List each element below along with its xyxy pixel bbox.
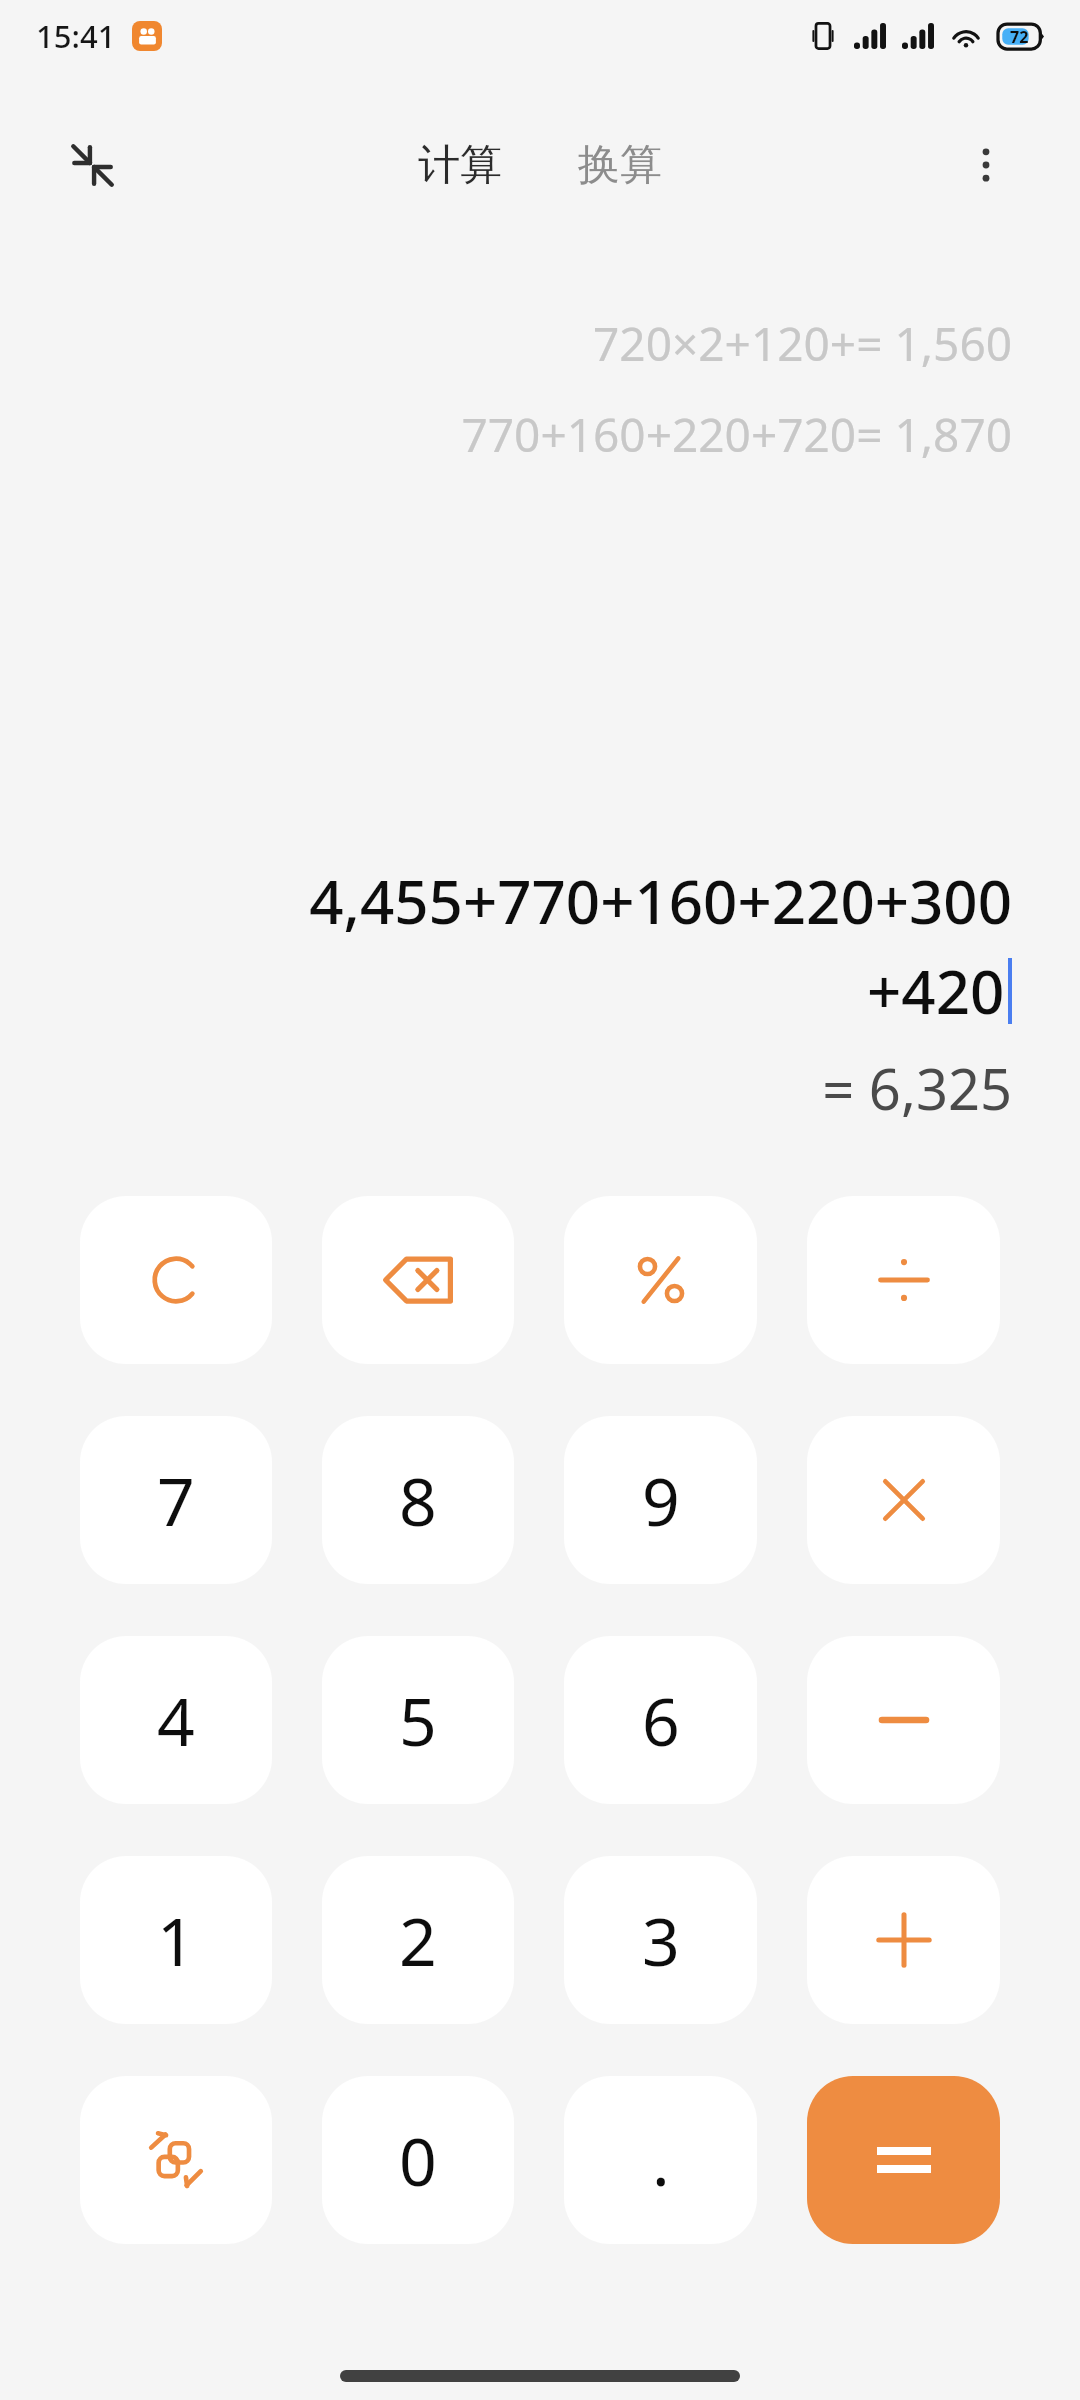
button[interactable]: Divide <box>807 1196 1000 1364</box>
button[interactable]: Clear <box>80 1196 272 1364</box>
button[interactable]: 0 <box>322 2076 514 2244</box>
staticText: = 6,325 <box>822 1050 1012 1126</box>
staticText: 4,455+770+160+220+300 <box>309 860 1012 942</box>
staticText: 5 <box>399 1675 437 1765</box>
staticText: 720×2+120+= 1,560 <box>593 312 1012 375</box>
button[interactable]: Percent <box>564 1196 757 1364</box>
staticText: 7 <box>157 1455 195 1545</box>
button[interactable]: 3 <box>564 1856 757 2024</box>
button[interactable]: More options <box>946 125 1026 205</box>
button[interactable]: Multiply <box>807 1416 1000 1584</box>
button[interactable]: 5 <box>322 1636 514 1804</box>
staticText: 72 <box>1010 26 1029 48</box>
button[interactable]: 6 <box>564 1636 757 1804</box>
button[interactable]: 1 <box>80 1856 272 2024</box>
button[interactable]: 8 <box>322 1416 514 1584</box>
staticText: 15:41 <box>36 15 116 57</box>
button[interactable]: 4 <box>80 1636 272 1804</box>
button[interactable]: 7 <box>80 1416 272 1584</box>
button[interactable]: Collapse <box>52 125 132 205</box>
staticText: 3 <box>642 1895 680 1985</box>
staticText: 6 <box>642 1675 680 1765</box>
staticText: 4 <box>157 1675 195 1765</box>
staticText: . <box>652 2115 670 2205</box>
button[interactable]: Backspace <box>322 1196 514 1364</box>
button[interactable]: Minus <box>807 1636 1000 1804</box>
button[interactable]: Equals <box>807 2076 1000 2244</box>
button[interactable]: 计算 <box>404 127 516 204</box>
button[interactable]: 换算 <box>564 127 676 204</box>
staticText: 9 <box>642 1455 680 1545</box>
staticText: 2 <box>399 1895 437 1985</box>
button[interactable]: Plus <box>807 1856 1000 2024</box>
staticText: 8 <box>399 1455 437 1545</box>
button[interactable]: Unit conversion <box>80 2076 272 2244</box>
staticText: 换算 <box>578 139 662 192</box>
staticText: 770+160+220+720= 1,870 <box>461 403 1012 466</box>
button[interactable]: 2 <box>322 1856 514 2024</box>
staticText: 0 <box>399 2115 437 2205</box>
staticText: 1 <box>157 1895 195 1985</box>
button[interactable]: . <box>564 2076 757 2244</box>
staticText: 计算 <box>418 139 502 192</box>
staticText: +420 <box>867 950 1005 1032</box>
button[interactable]: 9 <box>564 1416 757 1584</box>
